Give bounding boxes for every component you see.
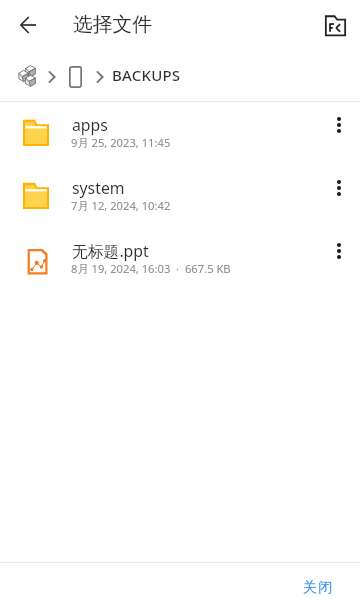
button[interactable]: Back <box>4 1 52 49</box>
button[interactable]: system <box>0 165 360 228</box>
staticText: 关闭 <box>302 579 333 597</box>
staticText: apps <box>72 114 322 136</box>
button[interactable]: More options <box>318 104 360 146</box>
button[interactable]: More options <box>318 230 360 272</box>
button[interactable]: Storage root <box>18 66 37 86</box>
staticText: 8月 19, 2024, 16:03 · 667.5 KB <box>71 261 341 276</box>
staticText: system <box>72 177 322 199</box>
button[interactable]: More options <box>318 167 360 209</box>
staticText: 7月 12, 2024, 10:42 <box>71 198 341 213</box>
staticText: 选择文件 <box>73 12 153 37</box>
button[interactable]: 关闭 <box>288 569 347 607</box>
staticText: 9月 25, 2023, 11:45 <box>71 135 341 150</box>
button[interactable]: File manager <box>312 2 358 48</box>
button[interactable]: BACKUPS <box>112 65 181 85</box>
button[interactable]: 无标题.ppt <box>0 228 360 291</box>
button[interactable]: Internal storage <box>69 66 82 88</box>
button[interactable]: apps <box>0 102 360 165</box>
staticText: 无标题.ppt <box>72 240 322 262</box>
